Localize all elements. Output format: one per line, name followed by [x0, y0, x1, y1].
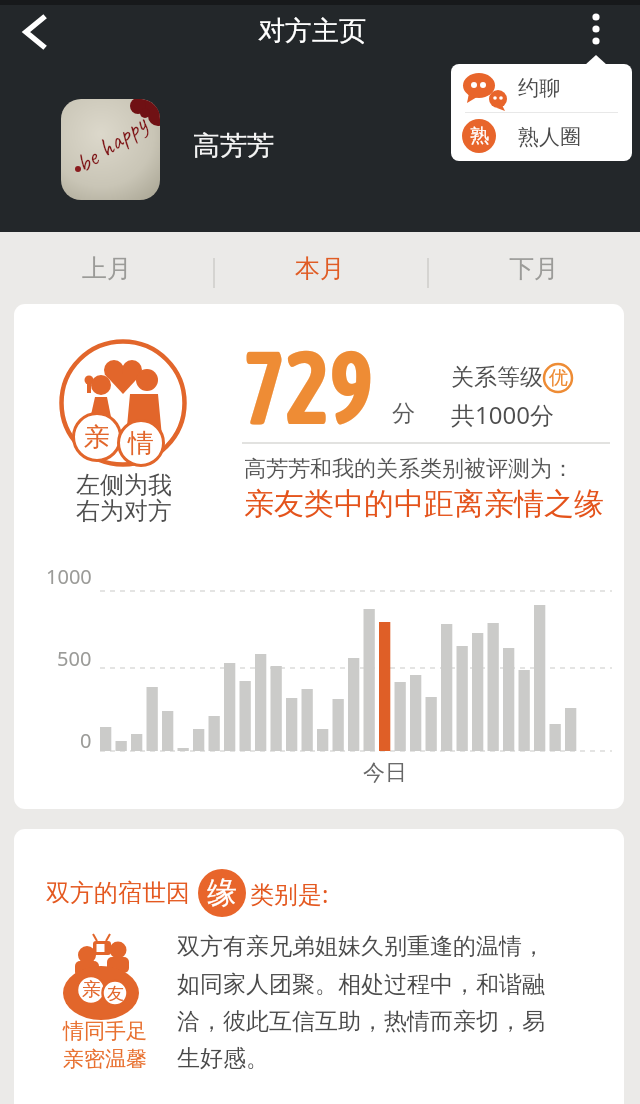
staticText: 关系等级	[451, 363, 543, 392]
staticText: 上月	[82, 253, 132, 284]
staticText: 1000	[46, 563, 92, 590]
staticText: 优	[549, 366, 568, 390]
staticText: 双方的宿世因	[46, 878, 190, 908]
staticText: 熟人圈	[518, 124, 581, 150]
staticText: 友	[107, 983, 124, 1004]
staticText: 今日	[363, 759, 407, 787]
staticText: 右为对方	[76, 496, 172, 526]
staticText: 亲友类中的中距离亲情之缘	[244, 485, 604, 523]
staticText: 类别是:	[250, 877, 329, 910]
staticText: 共1000分	[451, 398, 554, 431]
staticText: 本月	[295, 253, 345, 284]
button[interactable]	[575, 4, 617, 58]
staticText: 下月	[509, 253, 559, 284]
staticText: 高芳芳和我的关系类别被评测为：	[244, 455, 574, 483]
staticText: 500	[57, 645, 92, 672]
button[interactable]: 下月	[427, 232, 640, 304]
staticText: 亲密温馨	[63, 1046, 147, 1072]
staticText: 高芳芳	[193, 129, 274, 163]
button[interactable]: 本月	[213, 232, 427, 304]
staticText: 情	[128, 427, 154, 460]
button[interactable]: 上月	[0, 232, 213, 304]
staticText: 分	[392, 399, 415, 428]
staticText: 729	[242, 328, 374, 446]
staticText: 熟	[470, 124, 489, 148]
button[interactable]	[463, 72, 507, 110]
staticText: 亲	[84, 421, 110, 454]
button[interactable]: 熟人圈	[451, 113, 632, 161]
staticText: 情同手足	[63, 1018, 147, 1044]
staticText: 双方有亲兄弟姐妹久别重逢的温情， 如同家人团聚。相处过程中，和谐融 洽，彼此互信…	[177, 932, 545, 1073]
staticText: 左侧为我	[76, 470, 172, 500]
button[interactable]: be happy	[61, 99, 160, 200]
button[interactable]	[6, 4, 62, 60]
staticText: 缘	[207, 874, 237, 912]
staticText: 亲	[82, 978, 101, 1002]
staticText: 对方主页	[258, 14, 366, 48]
staticText: 0	[80, 727, 92, 754]
staticText: 约聊	[518, 75, 560, 101]
button[interactable]: 约聊	[451, 64, 632, 112]
staticText: be happy	[68, 107, 153, 180]
